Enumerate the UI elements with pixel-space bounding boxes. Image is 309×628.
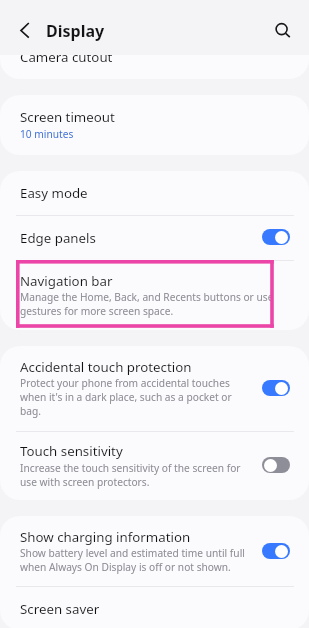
staticText: Touch sensitivity <box>20 442 123 460</box>
staticText: Manage the Home, Back, and Recents butto… <box>20 290 274 318</box>
button[interactable] <box>0 216 309 260</box>
button[interactable] <box>0 346 309 431</box>
staticText: Edge panels <box>20 229 96 247</box>
staticText: Camera cutout <box>20 48 113 66</box>
button[interactable]: Turn on <box>262 457 290 473</box>
button[interactable] <box>0 516 309 586</box>
button[interactable] <box>0 95 309 155</box>
staticText: Show battery level and estimated time un… <box>20 546 246 574</box>
button[interactable]: Turn off <box>262 380 290 396</box>
staticText: Navigation bar <box>20 272 113 290</box>
staticText: 10 minutes <box>20 127 74 141</box>
button[interactable] <box>0 171 309 216</box>
button[interactable] <box>0 432 309 500</box>
staticText: Accidental touch protection <box>20 358 192 376</box>
button[interactable]: Turn off <box>262 543 290 559</box>
staticText: Show charging information <box>20 528 191 546</box>
staticText: Easy mode <box>20 184 88 202</box>
button[interactable]: Turn off <box>262 229 290 245</box>
button[interactable]: Search <box>267 15 297 45</box>
staticText: Display <box>46 20 105 42</box>
button[interactable] <box>0 261 309 330</box>
staticText: Screen timeout <box>20 108 115 126</box>
button[interactable]: Back <box>10 15 40 45</box>
staticText: Protect your phone from accidental touch… <box>20 376 246 418</box>
staticText: Increase the touch sensitivity of the sc… <box>20 461 246 489</box>
button[interactable] <box>0 33 309 79</box>
staticText: Screen saver <box>20 600 100 618</box>
button[interactable] <box>0 587 309 628</box>
